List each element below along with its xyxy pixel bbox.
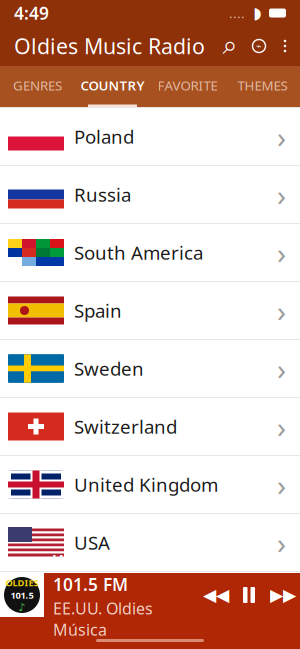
button[interactable]: Poland [0,108,300,166]
button[interactable]: More options [274,29,296,63]
button[interactable]: Previous [200,573,232,617]
button[interactable]: Sweden [0,340,300,398]
staticText: 4:49 [14,1,49,24]
staticText: › [277,349,286,388]
button[interactable]: Russia [0,166,300,224]
staticText: › [277,523,286,562]
button[interactable]: GENRES [0,66,75,107]
button[interactable]: South America [0,224,300,282]
staticText: › [277,465,286,504]
staticText: Poland [74,124,134,149]
staticText: › [277,175,286,214]
button[interactable]: Station artwork [0,573,44,617]
staticText: GENRES [13,76,62,94]
staticText: › [277,117,286,156]
staticText: ⌕ [222,33,237,59]
button[interactable]: Spain [0,282,300,340]
staticText: Spain [74,298,122,323]
staticText: COUNTRY [80,76,144,94]
staticText: ♪ [18,601,25,613]
staticText: Switzerland [74,414,177,439]
staticText: ◗ [253,4,261,22]
staticText: FAVORITE [157,76,217,94]
button[interactable]: Pause [232,573,266,617]
staticText: 101.5 [10,589,33,601]
staticText: Oldies Music Radio [14,32,205,60]
staticText: WXHC - Oldies 101.5 FM [53,550,175,596]
button[interactable]: Search [216,29,244,63]
button[interactable]: Next [266,573,300,617]
staticText: OLDIES [5,577,38,589]
staticText: Sweden [74,356,144,381]
staticText: Russia [74,182,131,207]
staticText: United Kingdom [74,472,218,497]
staticText: › [277,407,286,446]
staticText: THEMES [237,76,287,94]
button[interactable]: Switzerland [0,398,300,456]
staticText: › [277,233,286,272]
staticText: EE.UU. Oldies Música [53,598,153,640]
button[interactable]: USA [0,514,300,572]
staticText: .... [229,4,245,22]
staticText: › [277,291,286,330]
button[interactable]: COUNTRY [75,66,150,107]
button[interactable]: United Kingdom [0,456,300,514]
staticText: ▶▶ [270,585,296,605]
button[interactable]: THEMES [225,66,300,107]
button[interactable]: Alarm [244,29,274,63]
staticText: ⌁ [256,41,262,51]
staticText: USA [74,530,110,555]
staticText: South America [74,240,203,265]
staticText: ◀◀ [203,585,229,605]
button[interactable]: FAVORITE [150,66,225,107]
